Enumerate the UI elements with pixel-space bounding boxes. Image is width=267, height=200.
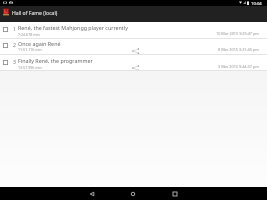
staticText: 11:51.116 min — [18, 47, 42, 52]
staticText: 13:57.996 min — [18, 65, 42, 70]
button[interactable]: Home — [116, 187, 149, 200]
staticText: 3 Mar 2015 9:44:37 pm — [218, 64, 259, 69]
staticText: Hall of Fame (local) — [12, 10, 58, 17]
staticText: 2 — [13, 41, 16, 48]
button[interactable]: Share — [131, 48, 140, 54]
button[interactable]: Recent apps — [158, 187, 191, 200]
staticText: Finally René, the programmer — [18, 57, 93, 64]
staticText: Once again René — [18, 40, 61, 47]
button[interactable]: Back — [75, 187, 108, 200]
staticText: 8 Mar 2015 3:31:45 pm — [218, 47, 259, 52]
staticText: 7:24.678 min — [18, 32, 40, 37]
button[interactable]: Share — [131, 65, 140, 71]
staticText: 1 — [13, 25, 16, 32]
staticText: 10:04 — [251, 1, 262, 7]
staticText: 3 — [13, 58, 16, 65]
button[interactable]: 1 — [0, 22, 267, 39]
staticText: 10 Mar 2015 9:25:47 pm — [216, 31, 259, 36]
staticText: René, the fastest Mahjongg player curren… — [18, 24, 128, 31]
button[interactable]: 3 — [0, 55, 267, 71]
button[interactable]: 2 — [0, 39, 267, 55]
